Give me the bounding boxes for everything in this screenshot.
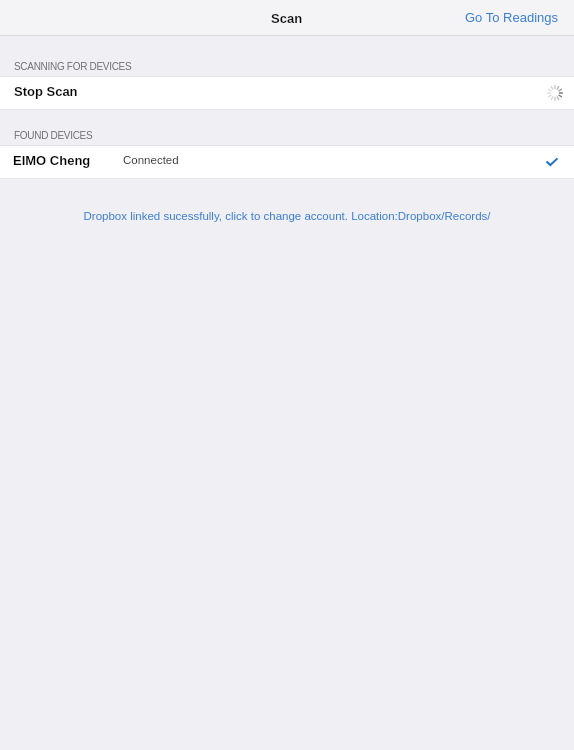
other: Scanning	[547, 85, 563, 101]
other: Connected	[545, 155, 559, 169]
staticText: Stop Scan	[14, 84, 78, 99]
staticText: EIMO Cheng	[13, 153, 91, 168]
staticText: Connected	[123, 154, 179, 167]
staticText: Go To Readings	[465, 10, 558, 25]
button[interactable]: Dropbox linked sucessfully, click to cha…	[0, 207, 574, 226]
staticText: SCANNING FOR DEVICES	[14, 61, 132, 72]
button[interactable]: Go To Readings	[451, 2, 574, 33]
staticText: FOUND DEVICES	[14, 130, 93, 141]
staticText: Scan	[271, 11, 303, 26]
staticText: Dropbox linked sucessfully, click to cha…	[0, 210, 574, 223]
button[interactable]: EIMO Cheng	[0, 146, 574, 178]
button[interactable]: Stop Scan	[0, 77, 574, 109]
